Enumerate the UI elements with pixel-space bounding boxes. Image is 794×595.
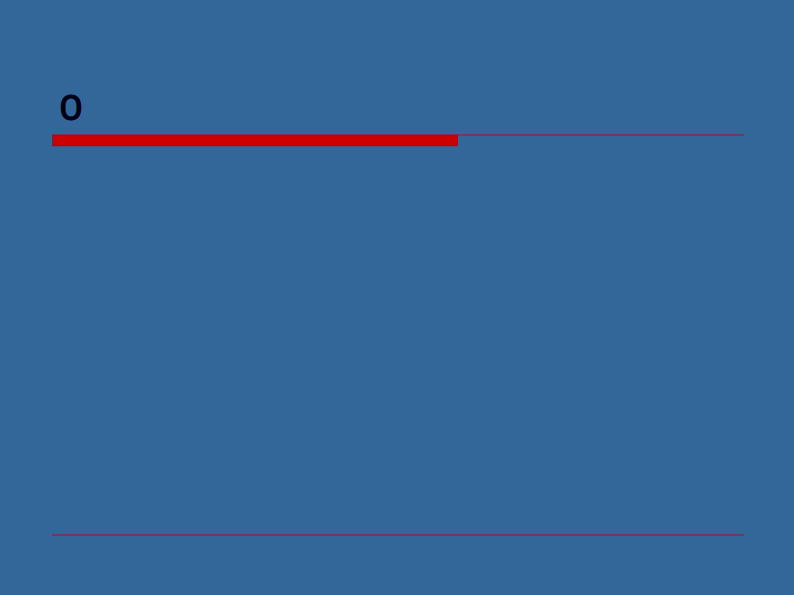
staticText: O [59, 83, 82, 132]
